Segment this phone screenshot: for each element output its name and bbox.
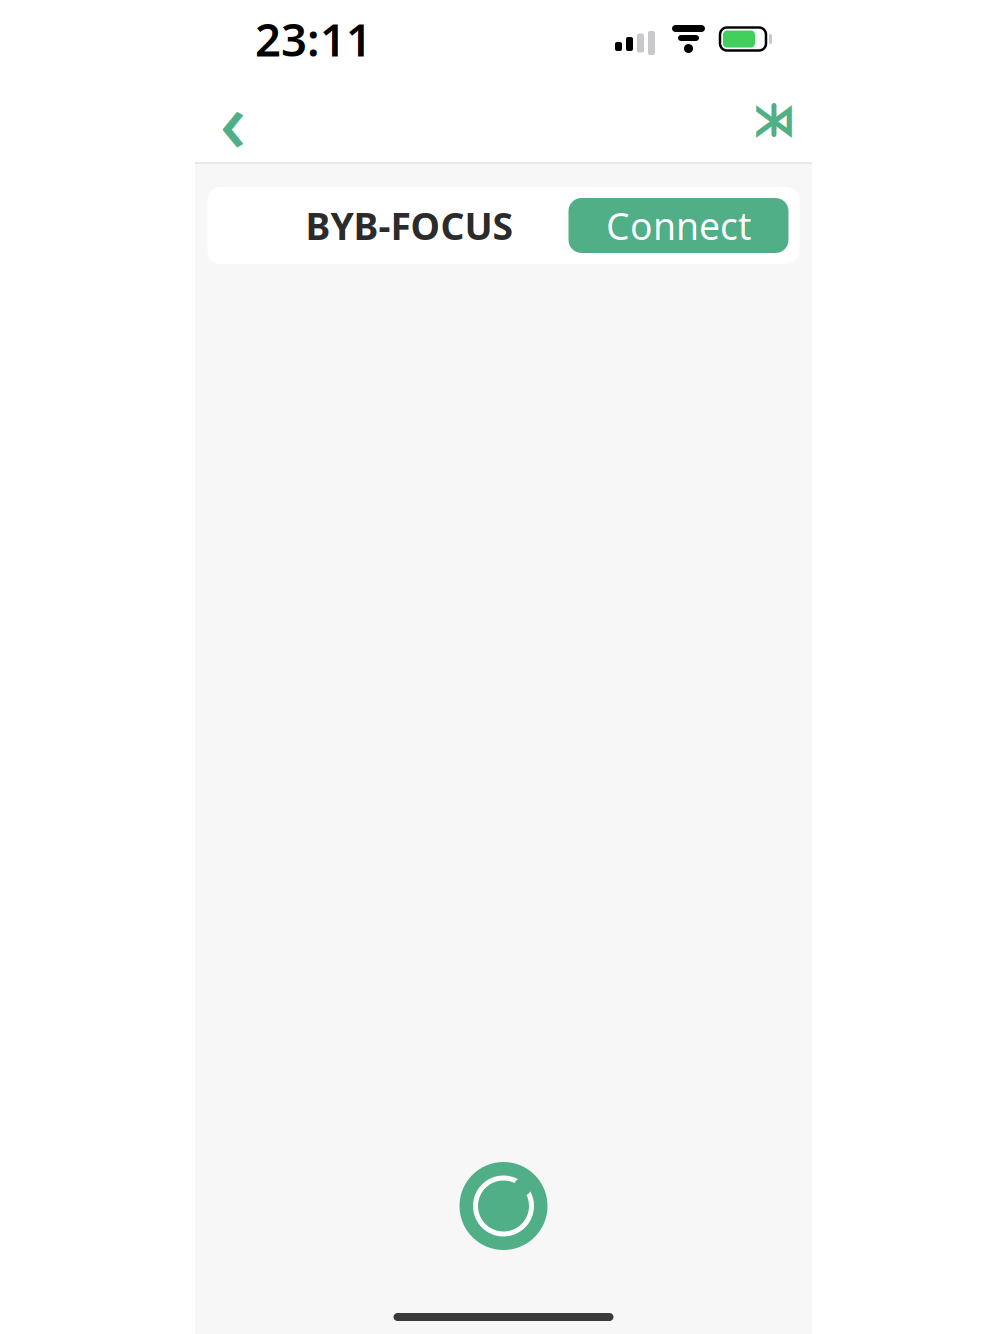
staticText: Connect — [606, 201, 751, 250]
button[interactable]: Bluetooth — [736, 78, 812, 162]
button[interactable]: Connecting — [453, 1156, 553, 1256]
staticText: ⋊ — [751, 94, 796, 146]
button[interactable]: Connect — [568, 198, 788, 253]
staticText: ‹ — [219, 65, 246, 175]
staticText: 23:11 — [255, 9, 372, 69]
staticText: BYB-FOCUS — [305, 201, 513, 250]
button[interactable]: Back — [195, 78, 271, 162]
